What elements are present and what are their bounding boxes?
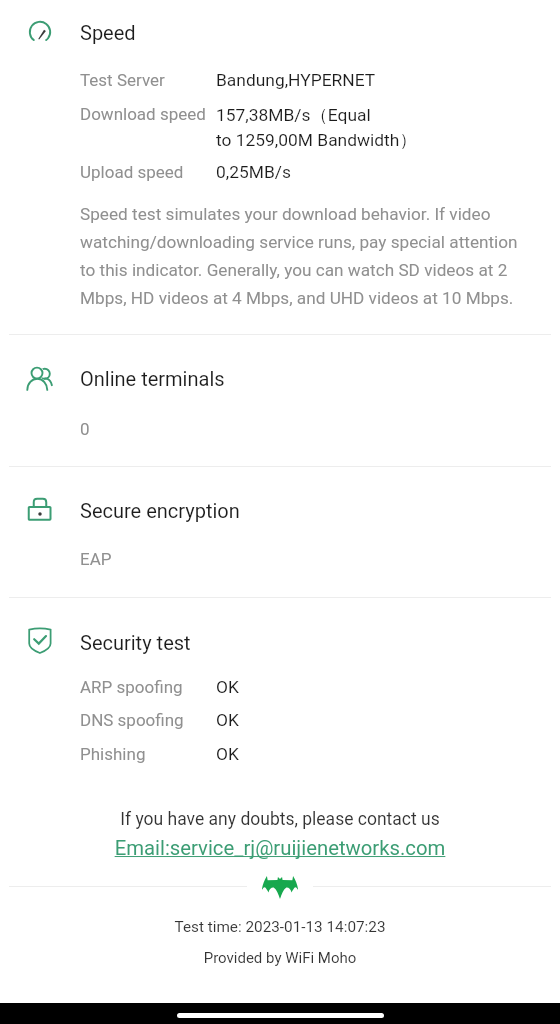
staticText: If you have any doubts, please contact u… [0, 809, 560, 830]
button[interactable]: Email:service_rj@ruijienetworks.com [0, 836, 560, 866]
staticText: Bandung,HYPERNET [216, 70, 376, 90]
staticText: Online terminals [80, 367, 225, 390]
staticText: 0 [80, 419, 90, 439]
staticText: Test time: 2023-01-13 14:07:23 [0, 918, 560, 936]
staticText: Phishing [80, 744, 146, 764]
staticText: DNS spoofing [80, 710, 184, 730]
button[interactable]: Online terminals [26, 366, 54, 394]
button[interactable]: Secure encryption [26, 497, 54, 525]
button[interactable]: Security test [26, 627, 54, 655]
staticText: Download speed [80, 104, 206, 124]
staticText: OK [216, 677, 239, 697]
staticText: EAP [80, 549, 112, 569]
staticText: OK [216, 710, 239, 730]
staticText: Email:service_rj@ruijienetworks.com [0, 836, 560, 860]
staticText: Security test [80, 631, 191, 654]
staticText: 0,25MB/s [216, 162, 291, 182]
staticText: 157,38MB/s（Equal to 1259,00M Bandwidth） [216, 104, 446, 151]
staticText: ARP spoofing [80, 677, 183, 697]
staticText: Speed [80, 21, 136, 44]
staticText: Upload speed [80, 162, 184, 182]
staticText: OK [216, 744, 239, 764]
staticText: Test Server [80, 70, 165, 90]
staticText: Speed test simulates your download behav… [80, 204, 524, 309]
button[interactable]: Speed [26, 18, 54, 46]
staticText: Secure encryption [80, 499, 240, 522]
staticText: Provided by WiFi Moho [0, 949, 560, 967]
